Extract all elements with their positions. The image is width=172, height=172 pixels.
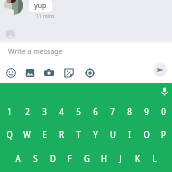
button[interactable]: 2 xyxy=(18,100,36,123)
button[interactable]: Sticker xyxy=(60,64,78,82)
staticText: Y xyxy=(93,129,98,140)
staticText: J xyxy=(119,153,122,164)
staticText: 7 xyxy=(110,106,115,117)
staticText: I xyxy=(128,129,131,140)
staticText: G xyxy=(84,153,90,164)
button[interactable]: Send xyxy=(153,63,167,77)
staticText: 9 xyxy=(144,106,149,117)
button[interactable]: Contact avatar xyxy=(4,0,23,15)
button[interactable]: O xyxy=(138,123,155,146)
button[interactable]: W xyxy=(18,123,36,146)
staticText: S xyxy=(33,153,38,164)
staticText: F xyxy=(67,153,72,164)
button[interactable]: I xyxy=(121,123,138,146)
button[interactable]: D xyxy=(44,147,61,170)
button[interactable]: E xyxy=(36,123,53,146)
button[interactable]: G xyxy=(78,147,95,170)
button[interactable]: 8 xyxy=(121,100,138,123)
button[interactable]: 5 xyxy=(70,100,87,123)
staticText: 8 xyxy=(127,106,132,117)
staticText: 6 xyxy=(93,106,98,117)
staticText: A xyxy=(15,153,21,164)
staticText: Write a message xyxy=(8,47,63,57)
button[interactable]: H xyxy=(95,147,112,170)
staticText: 5 xyxy=(76,106,81,117)
staticText: 1 xyxy=(7,106,12,117)
button[interactable]: Y xyxy=(87,123,104,146)
button[interactable]: 1 xyxy=(0,100,18,123)
button[interactable]: U xyxy=(104,123,121,146)
button[interactable]: Camera xyxy=(40,64,58,82)
staticText: P xyxy=(161,129,166,140)
staticText: H xyxy=(101,153,107,164)
staticText: T xyxy=(76,129,81,140)
staticText: U xyxy=(110,129,116,140)
staticText: 0 xyxy=(161,106,166,117)
button[interactable]: A xyxy=(9,147,27,170)
button[interactable]: P xyxy=(155,123,172,146)
button[interactable]: yup xyxy=(29,0,52,12)
staticText: 4 xyxy=(59,106,64,117)
button[interactable]: 9 xyxy=(138,100,155,123)
staticText: 2 xyxy=(25,106,30,117)
button[interactable]: R xyxy=(53,123,70,146)
button[interactable]: Q xyxy=(0,123,18,146)
button[interactable]: S xyxy=(27,147,44,170)
button[interactable]: Location xyxy=(81,64,99,82)
button[interactable]: 7 xyxy=(104,100,121,123)
staticText: yup xyxy=(34,1,47,11)
staticText: R xyxy=(59,129,64,140)
staticText: D xyxy=(50,153,56,164)
button[interactable]: 3 xyxy=(36,100,53,123)
staticText: Q xyxy=(6,129,13,140)
button[interactable]: Emoji xyxy=(2,64,20,82)
staticText: W xyxy=(23,129,31,140)
button[interactable]: J xyxy=(112,147,129,170)
button[interactable]: L xyxy=(146,147,163,170)
button[interactable]: Voice input xyxy=(157,84,171,98)
button[interactable]: 0 xyxy=(155,100,172,123)
staticText: E xyxy=(42,129,47,140)
button[interactable]: F xyxy=(61,147,78,170)
staticText: O xyxy=(143,129,150,140)
staticText: L xyxy=(152,153,157,164)
button[interactable]: T xyxy=(70,123,87,146)
staticText: 3 xyxy=(42,106,47,117)
button[interactable]: K xyxy=(129,147,146,170)
button[interactable]: 6 xyxy=(87,100,104,123)
staticText: K xyxy=(135,153,140,164)
staticText: 11 mins xyxy=(36,13,55,20)
button[interactable]: 4 xyxy=(53,100,70,123)
button[interactable]: Gallery xyxy=(21,64,39,82)
